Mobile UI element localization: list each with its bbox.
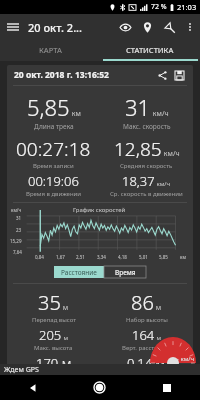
button[interactable]: Home	[66, 375, 133, 400]
staticText: 7,64	[13, 249, 22, 255]
staticText: 00:19:06	[28, 172, 79, 190]
staticText: км/ч	[162, 149, 180, 159]
button[interactable]: Share	[155, 68, 169, 82]
button[interactable]: More options	[180, 17, 200, 37]
staticText: Макс. скорость	[123, 122, 171, 131]
button[interactable]: Navigate	[158, 16, 180, 38]
staticText: Верт. расстояние	[122, 344, 172, 352]
staticText: 31	[16, 215, 22, 221]
staticText: 00:27:18	[16, 136, 91, 162]
staticText: 3,34	[97, 254, 106, 260]
staticText: 20 окт. 2...	[28, 20, 83, 35]
button[interactable]: Back	[0, 375, 66, 400]
staticText: км/ч	[179, 355, 195, 363]
button[interactable]: Расстояние	[54, 266, 104, 278]
staticText: Средняя скорость	[120, 162, 173, 170]
staticText: Набор высоты	[126, 316, 168, 324]
staticText: 21:03	[177, 2, 197, 12]
staticText: Время в движении	[26, 190, 82, 198]
staticText: 5,01	[139, 254, 148, 260]
staticText: км	[70, 109, 81, 119]
staticText: 31	[125, 92, 151, 122]
button[interactable]: Save	[172, 68, 186, 82]
button[interactable]: Menu	[0, 14, 26, 40]
staticText: ---	[173, 355, 179, 363]
staticText: КАРТА	[39, 45, 62, 55]
button[interactable]: Recents	[133, 375, 200, 400]
staticText: 170 м	[36, 354, 72, 372]
staticText: 5,85	[159, 254, 168, 260]
staticText: Ср. скорость в движении	[110, 190, 183, 198]
staticText: м	[61, 303, 69, 313]
button[interactable]: СТАТИСТИКА	[100, 40, 200, 59]
staticText: км/ч	[155, 180, 171, 188]
staticText: 12,85	[114, 136, 162, 162]
staticText: Перепад высот	[32, 316, 76, 324]
staticText: 2,51	[76, 254, 85, 260]
staticText: Длина трека	[34, 122, 74, 131]
staticText: Макс. высота	[34, 344, 73, 352]
staticText: 0,84	[35, 254, 44, 260]
staticText: км	[180, 254, 186, 260]
button[interactable]: Время	[104, 266, 146, 278]
staticText: Время	[115, 268, 136, 277]
staticText: Расстояние	[61, 268, 97, 277]
staticText: м	[155, 334, 162, 342]
staticText: Время записи	[33, 162, 74, 170]
staticText: СТАТИСТИКА	[126, 45, 174, 55]
staticText: м	[62, 334, 69, 342]
staticText: м	[154, 303, 162, 313]
staticText: 72 %	[151, 2, 167, 12]
staticText: 15,29	[10, 238, 22, 244]
staticText: 205	[39, 326, 62, 344]
staticText: 18,37	[122, 172, 155, 190]
button[interactable]: Visibility	[114, 16, 136, 38]
staticText: км/ч	[151, 109, 169, 119]
staticText: 23	[16, 227, 22, 233]
staticText: 35	[38, 289, 61, 316]
button[interactable]: My location	[136, 16, 158, 38]
staticText: 4,18	[118, 254, 127, 260]
staticText: График скоростей	[73, 206, 126, 214]
staticText: км/ч	[11, 207, 22, 213]
staticText: 164	[132, 326, 155, 344]
staticText: 86	[131, 289, 154, 316]
staticText: 0,14 м	[127, 354, 166, 372]
button[interactable]: КАРТА	[0, 40, 100, 59]
staticText: Ждем GPS	[4, 365, 39, 375]
staticText: 1,67	[56, 254, 65, 260]
staticText: 20 окт. 2018 г. 13:16:52	[14, 69, 109, 81]
staticText: 5,85	[27, 92, 70, 122]
